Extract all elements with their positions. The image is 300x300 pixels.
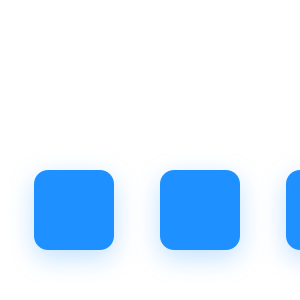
button[interactable]: First tile	[34, 170, 114, 250]
button[interactable]: Second tile	[160, 170, 240, 250]
button[interactable]: Third tile	[286, 170, 300, 250]
